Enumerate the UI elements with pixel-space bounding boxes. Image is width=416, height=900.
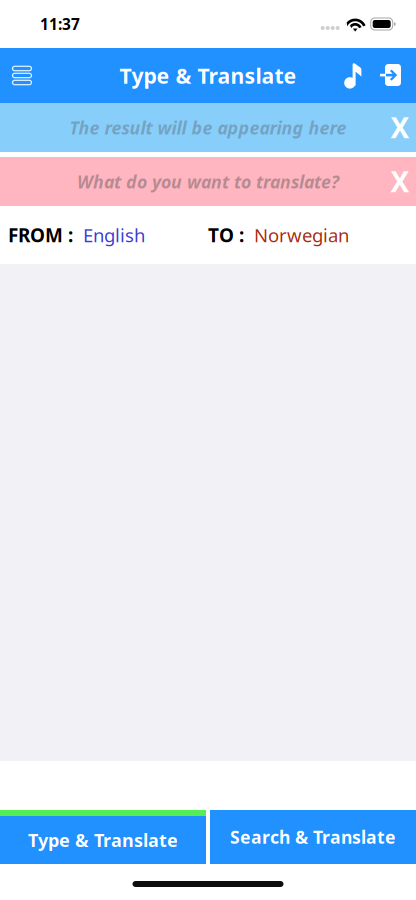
button[interactable]: Menu [1,48,43,103]
staticText: TO : [208,222,244,248]
staticText: X [390,162,409,200]
button[interactable]: Clear input [384,157,416,206]
staticText: Norwegian [254,222,349,248]
button[interactable]: Type & Translate [0,810,206,864]
staticText: Search & Translate [230,825,396,849]
staticText: 11:37 [40,13,80,35]
staticText: Type & Translate [28,828,178,852]
staticText: Type & Translate [119,61,296,90]
staticText: FROM : [8,222,73,248]
button[interactable]: Sound [336,48,370,103]
staticText: What do you want to translate? [77,169,339,194]
button[interactable]: Sign in [375,48,406,103]
staticText: The result will be appearing here [69,115,346,140]
button[interactable]: Search & Translate [210,810,416,864]
button[interactable]: Clear result [384,103,416,152]
button[interactable]: TO : [208,210,349,260]
staticText: X [390,108,409,146]
staticText: English [83,222,145,248]
button[interactable]: FROM : [0,210,145,260]
